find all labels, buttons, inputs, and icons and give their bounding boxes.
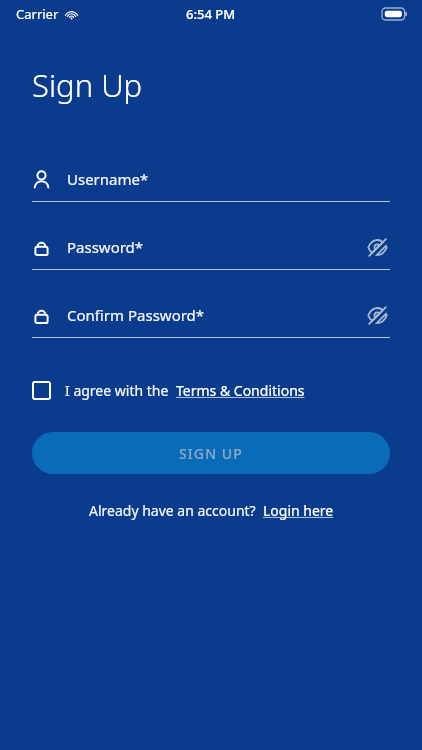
other: Agree to terms checkbox [32, 381, 51, 400]
staticText: 6:54 PM [186, 5, 236, 23]
button[interactable]: Confirm Password* [32, 298, 390, 338]
button[interactable]: Password* [32, 230, 390, 270]
button[interactable]: Username* [32, 162, 390, 202]
staticText: Login here [263, 501, 334, 520]
staticText: Sign Up [32, 64, 143, 106]
staticText: SIGN UP [179, 444, 243, 463]
staticText: Username* [67, 169, 390, 189]
button[interactable]: SIGN UP [32, 432, 390, 474]
staticText: Already have an account? [89, 501, 256, 520]
staticText: Terms & Conditions [176, 381, 305, 400]
button[interactable]: Show password [364, 234, 390, 260]
button[interactable]: Agree to terms checkbox [32, 381, 305, 400]
staticText: I agree with the [65, 381, 169, 400]
staticText: Confirm Password* [67, 305, 364, 325]
button[interactable]: Login here [263, 501, 334, 520]
staticText: Password* [67, 237, 364, 257]
button[interactable]: Terms & Conditions [176, 381, 305, 400]
staticText: Carrier [16, 5, 59, 23]
button[interactable]: Show password [364, 302, 390, 328]
